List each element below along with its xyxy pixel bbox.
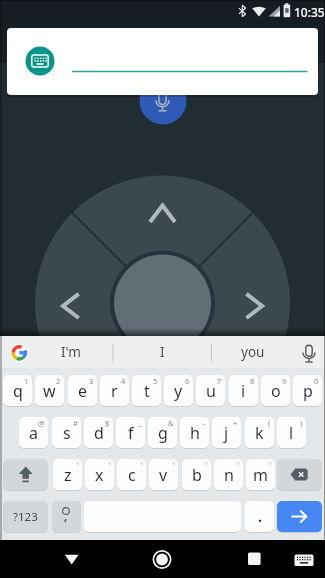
staticText: k xyxy=(255,422,264,444)
staticText: 0 xyxy=(314,376,319,386)
button[interactable]: g xyxy=(148,417,177,448)
staticText: r xyxy=(111,380,118,402)
staticText: t xyxy=(144,380,150,402)
staticText: ’ xyxy=(238,460,240,470)
staticText: ’ xyxy=(77,460,79,470)
staticText: ?123 xyxy=(13,509,38,525)
button[interactable]: r xyxy=(100,375,129,406)
staticText: b xyxy=(192,464,202,486)
button[interactable]: x xyxy=(85,459,114,490)
staticText: s xyxy=(63,422,71,444)
staticText: x xyxy=(95,464,104,486)
button[interactable] xyxy=(120,84,200,126)
button[interactable]: you xyxy=(211,336,295,368)
button[interactable]: h xyxy=(180,417,209,448)
button[interactable]: u xyxy=(196,375,225,406)
button[interactable]: v xyxy=(149,459,178,490)
button[interactable]: i xyxy=(229,375,258,406)
button[interactable]: o xyxy=(261,375,290,406)
button[interactable]: ?123 xyxy=(3,501,48,532)
button[interactable]: c xyxy=(117,459,146,490)
staticText: 3 xyxy=(89,376,94,386)
staticText: ’ xyxy=(206,460,208,470)
staticText: h xyxy=(190,422,200,444)
staticText: e xyxy=(78,380,88,402)
staticText: 4 xyxy=(121,376,126,386)
button[interactable]: n xyxy=(214,459,243,490)
button[interactable]: j xyxy=(212,417,241,448)
button[interactable]: a xyxy=(19,417,48,448)
button[interactable] xyxy=(277,501,322,532)
button[interactable]: w xyxy=(35,375,64,406)
staticText: 2 xyxy=(56,376,61,386)
staticText: + xyxy=(233,418,238,428)
button[interactable]: z xyxy=(53,459,82,490)
button[interactable] xyxy=(288,540,325,578)
staticText: q xyxy=(13,380,23,402)
staticText: u xyxy=(206,380,216,402)
button[interactable]: y xyxy=(164,375,193,406)
button[interactable] xyxy=(40,270,110,331)
button[interactable]: b xyxy=(182,459,211,490)
staticText: _ xyxy=(138,418,142,428)
button[interactable] xyxy=(7,28,318,95)
staticText: you xyxy=(241,343,265,361)
staticText: ’ xyxy=(270,460,272,470)
staticText: d xyxy=(94,422,104,444)
button[interactable]: l xyxy=(277,417,306,448)
button[interactable] xyxy=(52,501,81,532)
staticText: & xyxy=(168,418,174,428)
button[interactable] xyxy=(230,540,278,578)
staticText: ( xyxy=(268,418,271,428)
staticText: y xyxy=(174,380,183,402)
staticText: 6 xyxy=(185,376,190,386)
staticText: m xyxy=(253,464,268,486)
staticText: I xyxy=(160,343,165,361)
button[interactable] xyxy=(138,540,186,578)
staticText: ’ xyxy=(173,460,175,470)
staticText: 10:35 xyxy=(294,4,325,20)
staticText: i xyxy=(241,380,246,402)
button[interactable]: e xyxy=(68,375,97,406)
staticText: z xyxy=(64,464,72,486)
button[interactable]: p xyxy=(293,375,322,406)
staticText: l xyxy=(289,422,294,444)
button[interactable] xyxy=(48,540,96,578)
staticText: 8 xyxy=(250,376,255,386)
staticText: 7 xyxy=(217,376,222,386)
button[interactable]: t xyxy=(132,375,161,406)
staticText: g xyxy=(158,422,168,444)
staticText: ) xyxy=(300,418,303,428)
staticText: ’ xyxy=(141,460,143,470)
button[interactable]: s xyxy=(52,417,81,448)
staticText: - xyxy=(203,418,206,428)
button[interactable]: m xyxy=(246,459,275,490)
staticText: # xyxy=(73,418,78,428)
button[interactable]: . xyxy=(245,501,274,532)
button[interactable]: d xyxy=(84,417,113,448)
staticText: w xyxy=(43,380,56,402)
button[interactable]: k xyxy=(245,417,274,448)
staticText: 1 xyxy=(24,376,29,386)
staticText: 5 xyxy=(153,376,158,386)
button[interactable] xyxy=(277,459,322,490)
staticText: v xyxy=(159,464,168,486)
staticText: p xyxy=(303,380,313,402)
button[interactable] xyxy=(113,180,213,240)
staticText: . xyxy=(258,507,262,526)
staticText: @ xyxy=(38,418,45,428)
staticText: c xyxy=(128,464,136,486)
staticText: j xyxy=(224,422,229,444)
staticText: n xyxy=(224,464,234,486)
staticText: I'm xyxy=(61,343,81,361)
staticText: 9 xyxy=(282,376,287,386)
staticText: a xyxy=(29,422,38,444)
button[interactable]: I'm xyxy=(37,336,105,368)
button[interactable]: I xyxy=(113,336,211,368)
staticText: $ xyxy=(105,418,110,428)
button[interactable]: q xyxy=(3,375,32,406)
button[interactable] xyxy=(3,459,48,490)
button[interactable]: f xyxy=(116,417,145,448)
button[interactable] xyxy=(215,270,285,331)
